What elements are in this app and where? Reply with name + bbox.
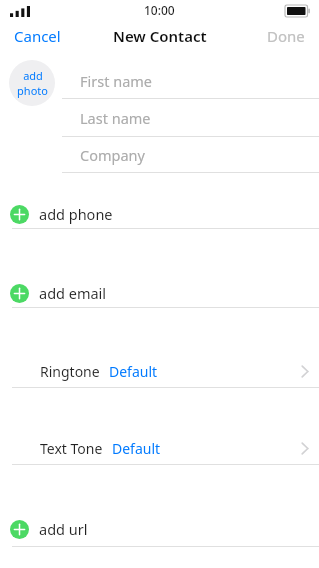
staticText: Text Tone: [40, 439, 103, 458]
staticText: Done: [267, 26, 305, 46]
button[interactable]: Done: [259, 22, 319, 50]
staticText: add url: [39, 519, 88, 539]
staticText: Cancel: [14, 26, 61, 46]
button[interactable]: Ringtone: [0, 360, 319, 382]
staticText: Company: [80, 145, 145, 165]
staticText: Default: [109, 362, 158, 381]
button[interactable]: add photo: [9, 60, 55, 106]
staticText: Ringtone: [40, 362, 100, 381]
staticText: 10:00: [144, 2, 175, 18]
button[interactable]: Cancel: [0, 22, 69, 50]
button[interactable]: add phone: [0, 204, 319, 224]
button[interactable]: add email: [0, 283, 319, 303]
staticText: New Contact: [113, 26, 207, 46]
staticText: Last name: [80, 108, 151, 128]
staticText: photo: [17, 83, 48, 98]
button[interactable]: Last name: [62, 107, 319, 129]
button[interactable]: Text Tone: [0, 437, 319, 459]
staticText: add email: [39, 283, 107, 303]
button[interactable]: Company: [62, 144, 319, 166]
staticText: First name: [80, 71, 153, 91]
staticText: add: [23, 68, 43, 83]
button[interactable]: add url: [0, 519, 319, 539]
staticText: Default: [112, 439, 161, 458]
button[interactable]: First name: [62, 70, 319, 92]
staticText: add phone: [39, 204, 113, 224]
